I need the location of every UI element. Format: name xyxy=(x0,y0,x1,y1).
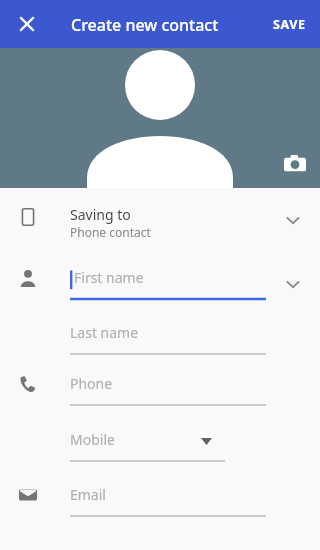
button[interactable]: SAVE xyxy=(263,8,316,41)
button[interactable]: Email xyxy=(70,481,266,517)
staticText: Mobile xyxy=(70,430,115,449)
staticText: Create new contact xyxy=(71,14,219,36)
button[interactable]: Close xyxy=(7,4,47,44)
staticText: SAVE xyxy=(273,16,306,33)
staticText: Last name xyxy=(70,323,139,342)
button[interactable]: Take photo xyxy=(284,152,306,174)
button[interactable]: First name xyxy=(70,264,266,300)
button[interactable]: Phone xyxy=(70,370,266,406)
staticText: First name xyxy=(74,268,144,287)
button[interactable]: Last name xyxy=(70,319,266,355)
staticText: Phone contact xyxy=(70,224,151,240)
staticText: Saving to xyxy=(70,205,131,224)
button[interactable]: Add contact photo xyxy=(0,48,320,188)
staticText: Phone xyxy=(70,374,113,393)
button[interactable]: Mobile xyxy=(70,426,225,462)
button[interactable]: Saving to xyxy=(0,188,320,250)
staticText: Email xyxy=(70,485,106,504)
